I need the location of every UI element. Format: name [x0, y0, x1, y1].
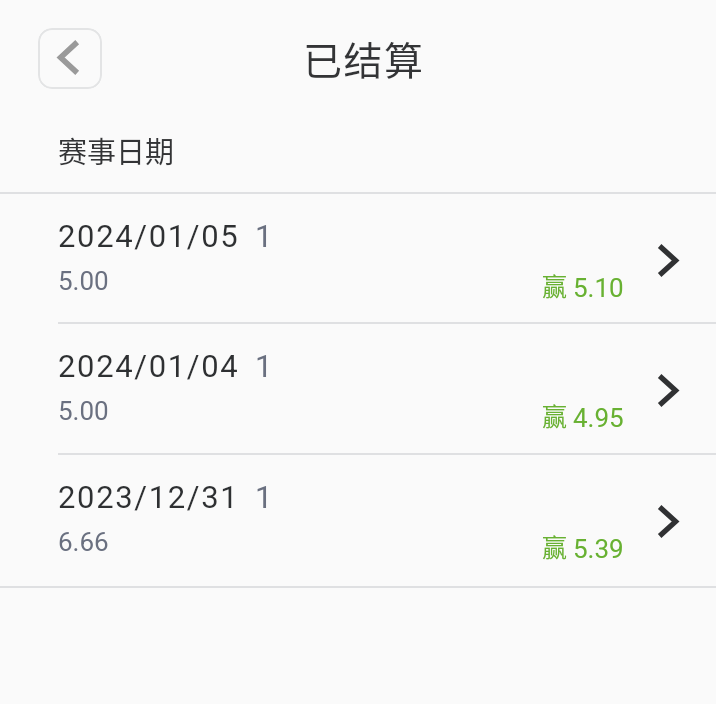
staticText: 5.39: [573, 534, 624, 564]
staticText: 赢: [542, 528, 568, 564]
staticText: 赛事日期: [58, 129, 175, 171]
button[interactable]: 2024/01/04: [0, 324, 716, 455]
staticText: 2024/01/04: [58, 348, 240, 384]
staticText: 赢: [542, 397, 568, 433]
button[interactable]: 2024/01/05: [0, 194, 716, 324]
staticText: 赢: [542, 267, 568, 303]
staticText: 5.10: [573, 273, 624, 303]
button[interactable]: Back: [38, 28, 102, 89]
staticText: 已结算: [303, 30, 425, 86]
staticText: 1: [255, 479, 273, 515]
staticText: 6.66: [58, 527, 109, 557]
staticText: 2023/12/31: [58, 479, 240, 515]
button[interactable]: 2023/12/31: [0, 455, 716, 586]
staticText: 1: [255, 218, 273, 254]
staticText: 4.95: [573, 403, 624, 433]
staticText: 5.00: [58, 396, 109, 426]
staticText: 1: [255, 348, 273, 384]
staticText: 2024/01/05: [58, 218, 240, 254]
staticText: 5.00: [58, 266, 109, 296]
